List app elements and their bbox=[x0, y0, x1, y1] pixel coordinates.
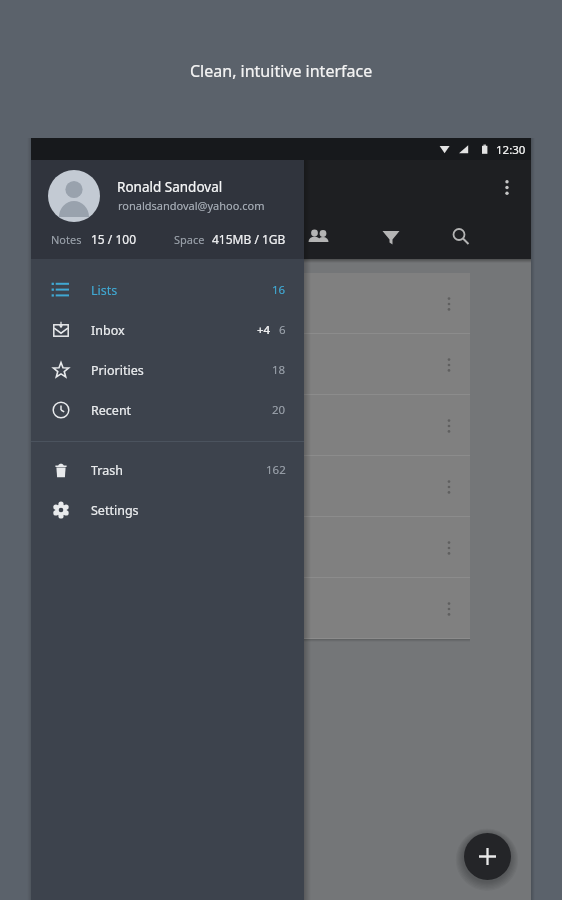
button[interactable]: Note options bbox=[432, 409, 466, 443]
button[interactable]: Note options bbox=[39, 517, 470, 578]
button[interactable]: Filter bbox=[374, 220, 406, 252]
staticText: 415MB / 1GB bbox=[212, 231, 286, 247]
staticText: 20 bbox=[272, 402, 286, 418]
button[interactable]: Note options bbox=[39, 334, 470, 395]
staticText: Lists bbox=[91, 282, 118, 299]
button[interactable]: Note options bbox=[39, 578, 470, 639]
button[interactable]: Note options bbox=[432, 531, 466, 565]
button[interactable]: Add note bbox=[464, 833, 511, 880]
button[interactable]: Inbox bbox=[31, 310, 304, 350]
button[interactable]: Note options bbox=[432, 592, 466, 626]
button[interactable]: Trash bbox=[31, 450, 304, 490]
button[interactable]: Search bbox=[444, 220, 476, 252]
button[interactable]: Priorities bbox=[31, 350, 304, 390]
button[interactable]: Note options bbox=[39, 273, 470, 334]
button[interactable]: Note options bbox=[432, 348, 466, 382]
staticText: +4 bbox=[257, 322, 271, 338]
staticText: Priorities bbox=[91, 362, 144, 379]
staticText: ronaldsandoval@yahoo.com bbox=[118, 198, 265, 213]
staticText: 15 / 100 bbox=[91, 231, 137, 247]
staticText: Ronald Sandoval bbox=[117, 178, 223, 196]
staticText: Clean, intuitive interface bbox=[190, 60, 373, 82]
button[interactable]: Recent bbox=[31, 390, 304, 430]
staticText: 12:30 bbox=[496, 142, 526, 158]
staticText: Trash bbox=[91, 462, 123, 479]
button[interactable]: Note options bbox=[39, 395, 470, 456]
button[interactable]: More options bbox=[491, 171, 523, 203]
button[interactable]: Settings bbox=[31, 490, 304, 530]
button[interactable]: Contacts bbox=[302, 220, 334, 252]
staticText: Inbox bbox=[91, 322, 125, 339]
button[interactable]: Note options bbox=[432, 287, 466, 321]
button[interactable]: Lists bbox=[31, 270, 304, 310]
staticText: Space bbox=[174, 232, 205, 247]
button[interactable]: Note options bbox=[432, 470, 466, 504]
staticText: 16 bbox=[272, 282, 286, 298]
staticText: Recent bbox=[91, 402, 132, 419]
staticText: 6 bbox=[279, 322, 286, 338]
staticText: Notes bbox=[51, 232, 82, 247]
staticText: 162 bbox=[266, 462, 286, 478]
staticText: 18 bbox=[272, 362, 286, 378]
button[interactable]: Note options bbox=[39, 456, 470, 517]
staticText: Settings bbox=[91, 502, 139, 519]
